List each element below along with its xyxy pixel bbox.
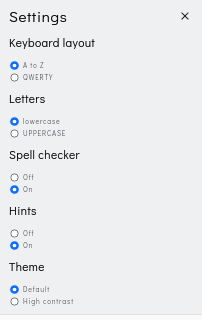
button[interactable]: On [0, 239, 202, 251]
staticText: UPPERCASE [23, 129, 67, 138]
button[interactable]: High contrast [0, 295, 202, 307]
button[interactable]: QWERTY [0, 71, 202, 83]
staticText: On [23, 185, 34, 194]
staticText: Letters [9, 91, 46, 106]
staticText: Keyboard layout [9, 35, 96, 50]
button[interactable]: lowercase [0, 115, 202, 127]
staticText: Settings [9, 6, 68, 26]
staticText: High contrast [23, 297, 74, 306]
button[interactable]: Default [0, 283, 202, 295]
staticText: On [23, 241, 34, 250]
staticText: lowercase [23, 117, 61, 126]
button[interactable]: Close settings [177, 8, 192, 23]
staticText: Hints [9, 203, 37, 218]
staticText: Off [23, 229, 35, 238]
button[interactable]: Off [0, 227, 202, 239]
staticText: Spell checker [9, 147, 80, 162]
staticText: Keyboard layout [9, 35, 96, 50]
staticText: Theme [9, 259, 45, 274]
button[interactable]: Off [0, 171, 202, 183]
staticText: A to Z [23, 61, 45, 70]
button[interactable]: On [0, 183, 202, 195]
staticText: Settings [9, 6, 68, 26]
staticText: Hints [9, 203, 37, 218]
staticText: Letters [9, 91, 46, 106]
staticText: Spell checker [9, 147, 80, 162]
staticText: Default [23, 285, 50, 294]
staticText: QWERTY [23, 73, 54, 82]
button[interactable]: UPPERCASE [0, 127, 202, 139]
staticText: Theme [9, 259, 45, 274]
staticText: Off [23, 173, 35, 182]
button[interactable]: A to Z [0, 59, 202, 71]
